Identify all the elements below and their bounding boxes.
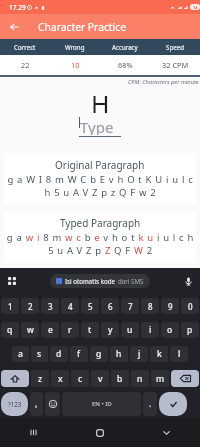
button[interactable]: Emoji: [45, 392, 60, 416]
staticText: q: [7, 324, 13, 336]
staticText: Character Practice: [38, 20, 126, 34]
button[interactable]: Original Paragraph: [4, 153, 196, 205]
button[interactable]: 6: [101, 298, 119, 314]
button[interactable]: s: [31, 346, 48, 362]
button[interactable]: u: [121, 322, 139, 338]
button[interactable]: p: [181, 322, 199, 338]
button[interactable]: Typed Paragraph: [4, 211, 196, 263]
button[interactable]: d: [50, 346, 68, 362]
button[interactable]: 4: [61, 298, 79, 314]
button[interactable]: n: [131, 370, 149, 387]
staticText: Accuracy: [112, 43, 138, 51]
button[interactable]: Voice input: [180, 273, 196, 289]
staticText: e: [48, 324, 53, 336]
staticText: 3: [48, 301, 53, 312]
button[interactable]: z: [31, 370, 49, 387]
button[interactable]: q: [1, 322, 19, 338]
staticText: r: [68, 324, 72, 336]
staticText: Original Paragraph: [55, 158, 145, 172]
button[interactable]: ,: [30, 392, 43, 416]
button[interactable]: Recents: [0, 418, 66, 447]
staticText: 0: [188, 301, 193, 312]
staticText: Isi otomatis kode: [65, 277, 115, 285]
staticText: o: [167, 324, 173, 336]
button[interactable]: k: [150, 346, 168, 362]
staticText: .: [149, 398, 152, 410]
staticText: m: [156, 373, 165, 385]
staticText: Typed Paragraph: [60, 216, 141, 230]
button[interactable]: Symbols: [1, 392, 28, 416]
button[interactable]: o: [161, 322, 179, 338]
staticText: p: [187, 324, 193, 336]
staticText: H: [91, 87, 110, 113]
staticText: 6: [108, 301, 113, 312]
button[interactable]: Shift: [1, 370, 29, 387]
button[interactable]: i: [141, 322, 159, 338]
button[interactable]: 3: [41, 298, 59, 314]
staticText: 17.29: [9, 3, 26, 12]
button[interactable]: g: [90, 346, 108, 362]
staticText: c: [78, 373, 83, 385]
button[interactable]: Isi otomatis kode: [50, 274, 150, 288]
button[interactable]: Toolbar: [4, 273, 20, 289]
button[interactable]: a: [12, 346, 29, 362]
button[interactable]: r: [61, 322, 79, 338]
staticText: a: [18, 348, 23, 360]
staticText: b: [117, 373, 123, 385]
button[interactable]: 7: [121, 298, 139, 314]
staticText: d: [56, 348, 62, 360]
staticText: k: [157, 348, 162, 360]
button[interactable]: c: [71, 370, 89, 387]
staticText: i: [149, 324, 152, 336]
staticText: 32 CPM: [162, 60, 189, 70]
staticText: 5: [88, 301, 93, 312]
button[interactable]: 5: [81, 298, 99, 314]
staticText: gaWI8mWCbEvhOtKUiulc h5uAVZpzQFw2: [6, 173, 196, 199]
button[interactable]: x: [51, 370, 69, 387]
staticText: 10: [71, 60, 80, 70]
staticText: 8: [148, 301, 153, 312]
button[interactable]: Space: [62, 392, 141, 416]
staticText: 2: [28, 301, 33, 312]
staticText: Type: [80, 117, 114, 135]
staticText: Correct: [14, 43, 36, 51]
staticText: CPM: Characters per minute: [128, 78, 199, 86]
staticText: ?123: [8, 400, 22, 408]
staticText: l: [178, 348, 181, 360]
staticText: gawi8mwcbevhotkuiulch 5uAVZpZQFW2: [6, 231, 196, 257]
button[interactable]: Hide keyboard: [133, 418, 200, 447]
staticText: u: [127, 324, 133, 336]
staticText: s: [37, 348, 42, 360]
button[interactable]: e: [41, 322, 59, 338]
button[interactable]: Home: [66, 418, 133, 447]
button[interactable]: Back: [5, 17, 24, 36]
button[interactable]: m: [151, 370, 169, 387]
staticText: h: [116, 348, 122, 360]
button[interactable]: w: [21, 322, 39, 338]
button[interactable]: 1: [1, 298, 19, 314]
button[interactable]: y: [101, 322, 119, 338]
staticText: dari SMS: [118, 277, 144, 285]
staticText: x: [58, 373, 63, 385]
button[interactable]: 8: [141, 298, 159, 314]
staticText: 14: [193, 5, 198, 10]
button[interactable]: 2: [21, 298, 39, 314]
staticText: Speed: [166, 43, 184, 51]
staticText: z: [38, 373, 43, 385]
button[interactable]: h: [110, 346, 128, 362]
button[interactable]: l: [170, 346, 188, 362]
button[interactable]: Enter: [159, 392, 187, 416]
button[interactable]: 0: [181, 298, 199, 314]
button[interactable]: b: [111, 370, 129, 387]
button[interactable]: 9: [161, 298, 179, 314]
button[interactable]: .: [143, 392, 157, 416]
button[interactable]: f: [70, 346, 88, 362]
staticText: 22: [21, 60, 30, 70]
button[interactable]: v: [91, 370, 109, 387]
button[interactable]: j: [130, 346, 148, 362]
button[interactable]: Backspace: [171, 370, 199, 387]
staticText: v: [98, 373, 103, 385]
staticText: f: [77, 348, 81, 360]
button[interactable]: t: [81, 322, 99, 338]
staticText: 68%: [118, 60, 133, 70]
